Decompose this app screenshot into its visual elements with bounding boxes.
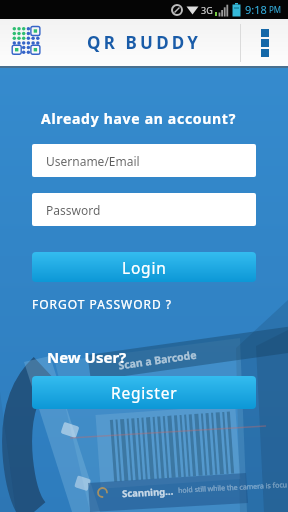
staticText: 9:18	[245, 2, 267, 17]
button[interactable]: Register	[32, 376, 256, 409]
button[interactable]: Password	[32, 193, 256, 226]
staticText: Username/Email	[46, 153, 140, 169]
button[interactable]: FORGOT PASSWORD ?	[32, 296, 173, 312]
button[interactable]: Login	[32, 252, 256, 282]
button[interactable]: Username/Email	[32, 144, 256, 177]
staticText: 3G	[201, 4, 213, 16]
button[interactable]	[241, 19, 288, 66]
staticText: Scan a Barcode	[117, 348, 198, 372]
staticText: Register	[111, 382, 178, 403]
staticText: Password	[46, 202, 101, 218]
staticText: New User?	[47, 347, 127, 367]
staticText: Scanning...	[122, 485, 174, 500]
staticText: hold still while the camera is focu	[178, 480, 288, 496]
button[interactable]	[12, 26, 40, 56]
staticText: Login	[122, 257, 167, 278]
staticText: QR BUDDY	[87, 31, 202, 54]
staticText: Already have an account?	[41, 109, 237, 128]
staticText: PM	[269, 4, 282, 15]
